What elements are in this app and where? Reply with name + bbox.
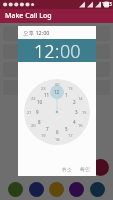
staticText: 4 <box>73 119 76 125</box>
button[interactable]: 취소 <box>58 163 76 175</box>
button[interactable] <box>3 80 110 95</box>
button[interactable] <box>69 182 84 197</box>
button[interactable] <box>49 182 64 197</box>
staticText: 17 <box>68 133 73 138</box>
staticText: 15 <box>82 110 87 115</box>
staticText: 확인 <box>80 166 90 172</box>
staticText: 5 <box>65 126 68 132</box>
button[interactable] <box>29 182 44 197</box>
staticText: 7 <box>46 126 49 132</box>
button[interactable] <box>8 182 23 197</box>
staticText: 14 <box>78 96 83 101</box>
staticText: 11 <box>44 92 50 98</box>
button[interactable]: Add <box>92 159 109 176</box>
staticText: 21 <box>27 110 32 115</box>
staticText: 18 <box>55 137 60 142</box>
staticText: 23 <box>41 86 46 91</box>
staticText: 16 <box>78 123 83 128</box>
staticText: 20 <box>31 123 36 128</box>
button[interactable] <box>3 44 110 59</box>
staticText: 19 <box>41 133 46 138</box>
staticText: 12 <box>54 89 60 95</box>
button[interactable] <box>90 182 105 197</box>
button[interactable] <box>3 62 110 77</box>
staticText: 9 <box>36 109 39 115</box>
button[interactable] <box>3 26 110 41</box>
button[interactable]: 00 <box>60 39 81 62</box>
staticText: 11:33 <box>99 1 112 8</box>
staticText: 2 <box>73 99 76 105</box>
staticText: : <box>55 39 60 62</box>
staticText: Make Call Log <box>5 11 52 21</box>
staticText: 1 <box>65 92 68 98</box>
button[interactable]: 확인 <box>76 163 96 175</box>
staticText: 10 <box>37 99 43 105</box>
staticText: 00 <box>55 82 60 87</box>
button[interactable]: 12 <box>34 39 55 62</box>
staticText: 8 <box>38 119 41 125</box>
staticText: 13 <box>68 86 73 91</box>
staticText: 6 <box>56 129 59 135</box>
staticText: 22 <box>31 96 36 101</box>
staticText: 취소 <box>62 166 72 172</box>
button[interactable]: Hour clock face <box>24 79 90 145</box>
staticText: 오후 12:00 <box>23 29 50 37</box>
staticText: 3 <box>75 109 78 115</box>
